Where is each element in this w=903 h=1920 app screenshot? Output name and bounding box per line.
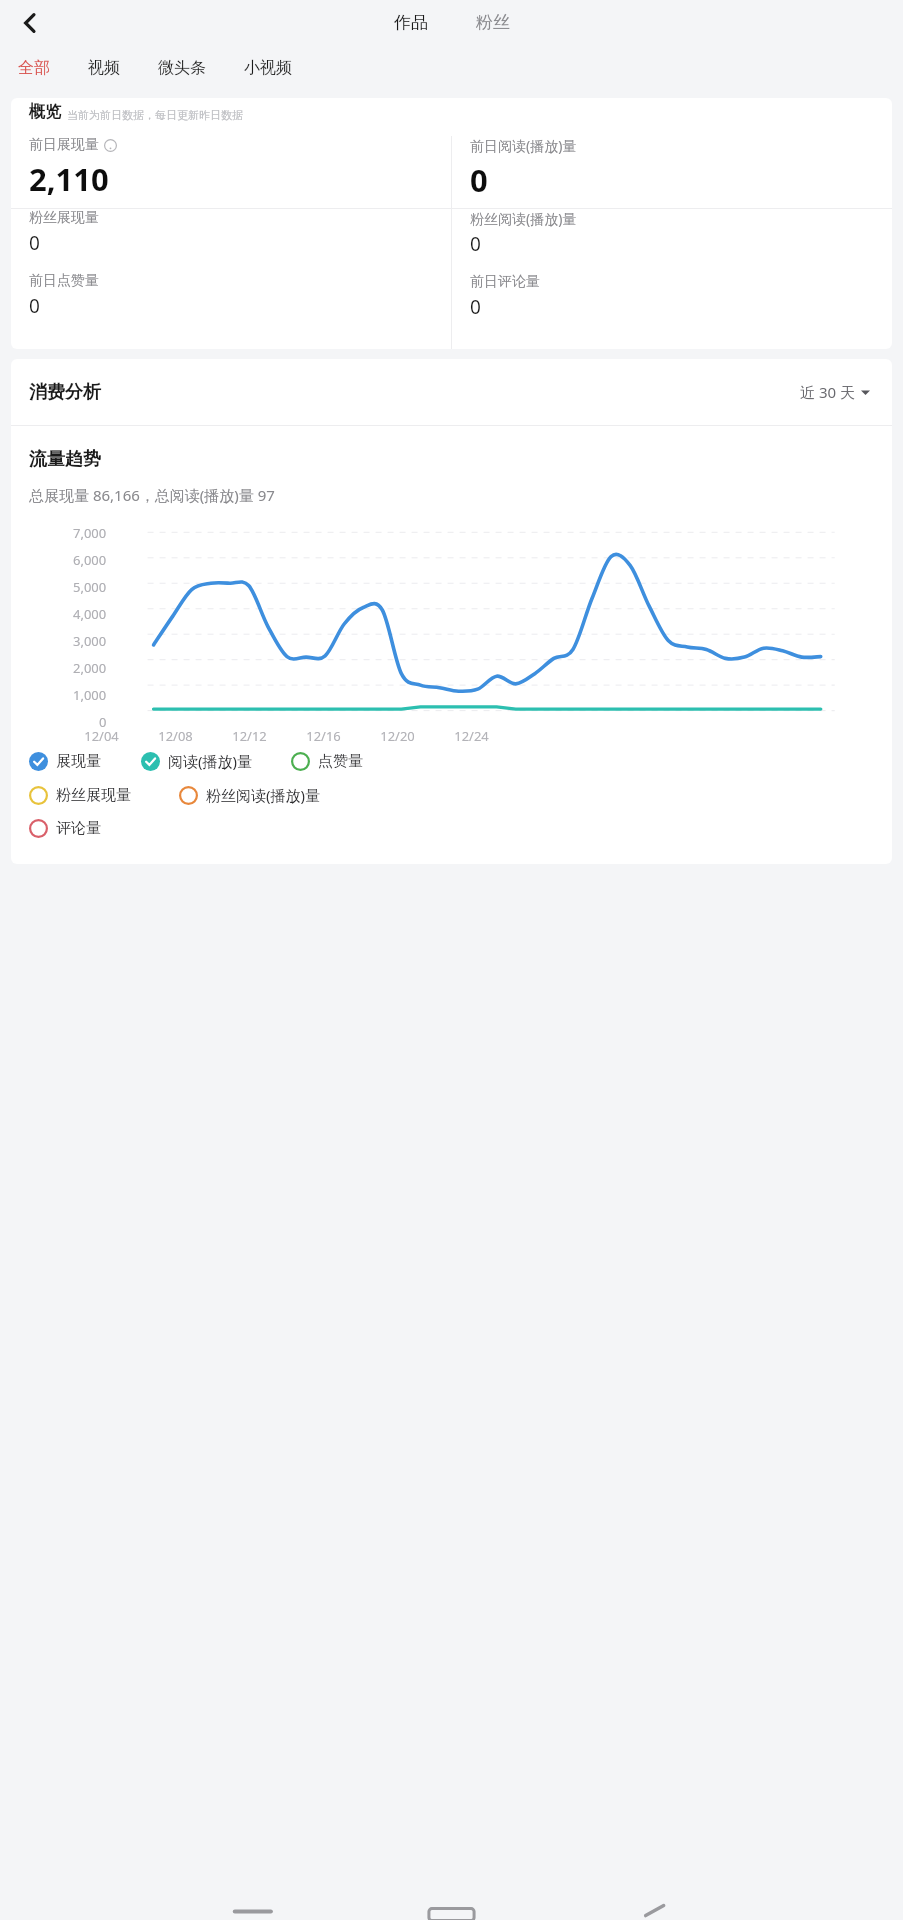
staticText: 前日点赞量 (29, 272, 99, 290)
staticText: 粉丝展现量 (29, 209, 99, 227)
staticText: 0 (29, 293, 40, 319)
button[interactable]: 作品 (388, 12, 434, 33)
staticText: 0 (29, 230, 40, 256)
staticText: 5,000 (73, 578, 107, 596)
staticText: 消费分析 (29, 381, 101, 404)
staticText: 7,000 (73, 524, 107, 542)
staticText: 视频 (88, 58, 120, 78)
button[interactable]: 评论量 (29, 819, 179, 838)
button[interactable]: 展现量 (29, 752, 141, 771)
staticText: 前日评论量 (470, 273, 540, 291)
button[interactable]: 微头条 (154, 52, 210, 84)
button[interactable]: 近 30 天 (796, 378, 874, 406)
staticText: 12/16 (306, 727, 341, 745)
staticText: 0 (470, 294, 481, 320)
staticText: 概览 (29, 102, 61, 122)
staticText: 展现量 (56, 752, 101, 771)
button[interactable]: 粉丝阅读(播放)量 (179, 785, 379, 805)
staticText: 粉丝阅读(播放)量 (206, 785, 321, 805)
staticText: 前日展现量 (29, 136, 99, 154)
staticText: 2,000 (73, 659, 107, 677)
staticText: 微头条 (158, 58, 206, 78)
button[interactable]: Back (8, 1, 52, 45)
staticText: 评论量 (56, 819, 101, 838)
staticText: 全部 (18, 58, 50, 78)
staticText: 12/12 (232, 727, 267, 745)
staticText: 4,000 (73, 605, 107, 623)
staticText: 6,000 (73, 551, 107, 569)
button[interactable]: 小视频 (240, 52, 296, 84)
button[interactable]: 粉丝展现量 (29, 786, 179, 805)
button[interactable]: 视频 (84, 52, 124, 84)
staticText: 3,000 (73, 632, 107, 650)
staticText: 12/04 (84, 727, 119, 745)
staticText: 0 (99, 713, 107, 731)
staticText: 当前为前日数据，每日更新昨日数据 (67, 108, 243, 122)
staticText: 小视频 (244, 58, 292, 78)
staticText: 1,000 (73, 686, 107, 704)
staticText: 粉丝展现量 (56, 786, 131, 805)
staticText: 0 (470, 159, 488, 201)
staticText: 粉丝 (476, 12, 510, 33)
button[interactable]: 点赞量 (291, 752, 401, 771)
button[interactable]: 阅读(播放)量 (141, 751, 291, 771)
button[interactable]: 粉丝 (470, 12, 516, 33)
staticText: 点赞量 (318, 752, 363, 771)
staticText: 流量趋势 (29, 448, 101, 471)
staticText: 近 30 天 (800, 382, 855, 402)
staticText: 12/08 (158, 727, 193, 745)
staticText: 12/24 (454, 727, 489, 745)
button[interactable]: 全部 (14, 52, 54, 84)
staticText: 0 (470, 231, 481, 257)
staticText: 总展现量 86,166，总阅读(播放)量 97 (29, 485, 275, 505)
staticText: 粉丝阅读(播放)量 (470, 209, 577, 228)
staticText: 2,110 (29, 158, 109, 200)
staticText: 前日阅读(播放)量 (470, 136, 577, 155)
staticText: 12/20 (380, 727, 415, 745)
staticText: 作品 (394, 12, 428, 33)
staticText: 阅读(播放)量 (168, 751, 253, 771)
